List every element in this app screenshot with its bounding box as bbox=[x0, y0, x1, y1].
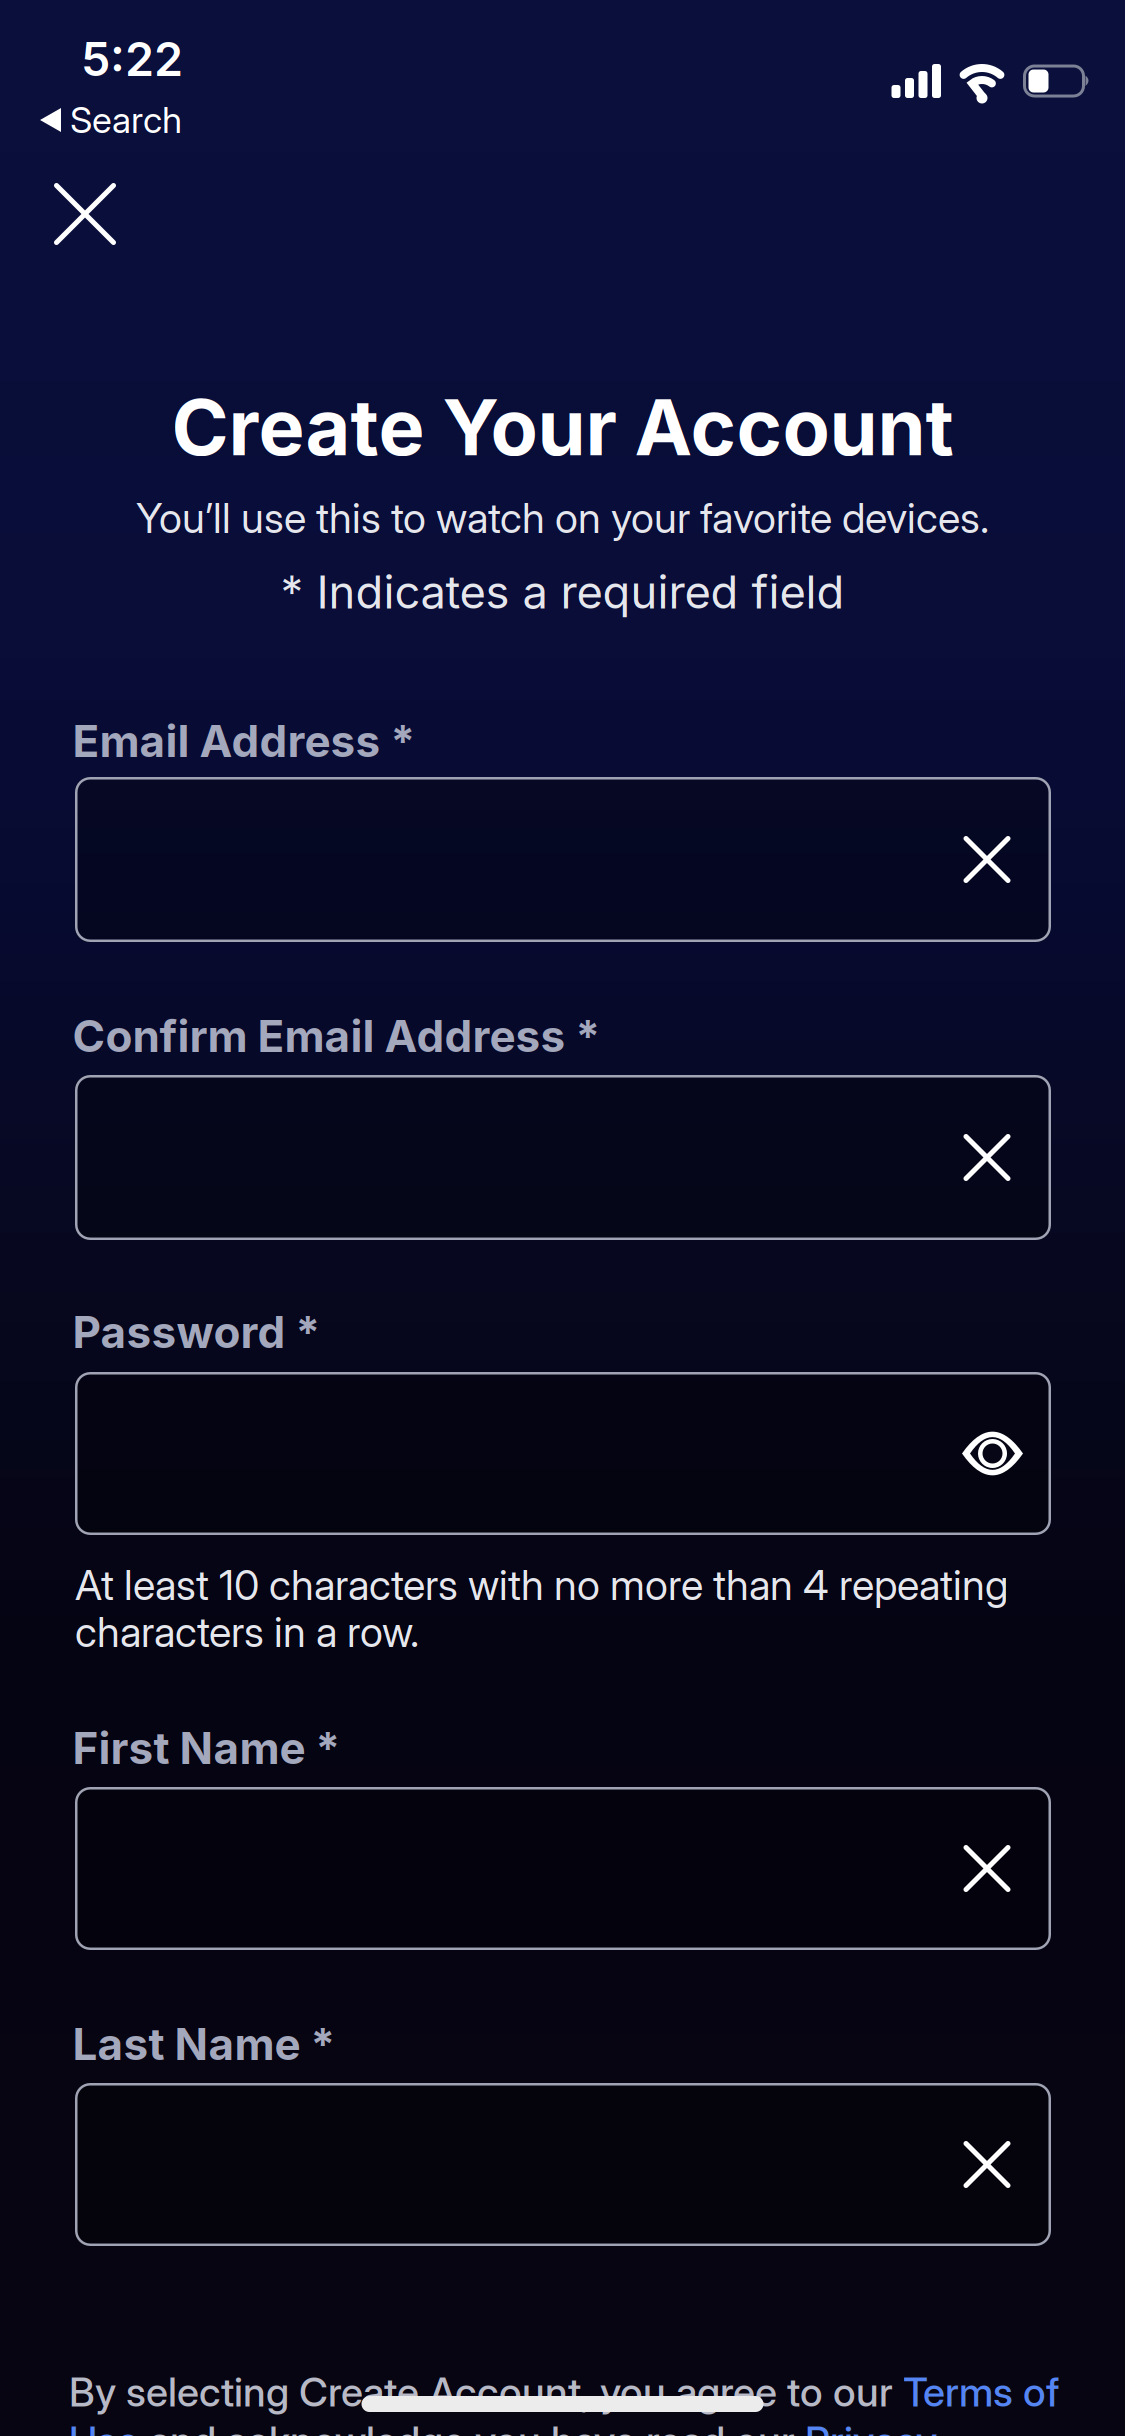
button[interactable] bbox=[75, 777, 1051, 942]
staticText: characters in a row. bbox=[75, 1608, 419, 1656]
staticText: Privacy bbox=[805, 2417, 937, 2436]
staticText: * Indicates a required field bbox=[280, 565, 844, 619]
staticText: Password * bbox=[72, 1306, 320, 1358]
button[interactable] bbox=[75, 1372, 1051, 1535]
button[interactable]: Privacy bbox=[805, 2417, 937, 2436]
staticText: Confirm Email Address * bbox=[72, 1010, 600, 1062]
staticText: Create Your Account bbox=[171, 381, 953, 473]
button[interactable] bbox=[75, 1787, 1051, 1950]
staticText: Email Address * bbox=[72, 715, 415, 767]
staticText: Search bbox=[70, 99, 182, 141]
staticText: 5:22 bbox=[81, 31, 183, 87]
staticText: Use bbox=[69, 2417, 139, 2436]
button[interactable] bbox=[39, 168, 131, 260]
staticText: First Name * bbox=[72, 1722, 340, 1774]
button[interactable]: Terms of bbox=[903, 2368, 1059, 2416]
staticText: and acknowledge you have read our bbox=[139, 2417, 805, 2436]
staticText: At least 10 characters with no more than… bbox=[75, 1561, 1008, 1609]
button[interactable]: Search bbox=[40, 99, 182, 141]
staticText: You’ll use this to watch on your favorit… bbox=[136, 494, 989, 542]
staticText: By selecting Create Account, you agree t… bbox=[69, 2368, 903, 2416]
button[interactable] bbox=[75, 1075, 1051, 1240]
staticText: Terms of bbox=[903, 2368, 1059, 2416]
staticText: Last Name * bbox=[72, 2018, 335, 2070]
button[interactable]: Use bbox=[69, 2417, 139, 2436]
button[interactable] bbox=[75, 2083, 1051, 2246]
